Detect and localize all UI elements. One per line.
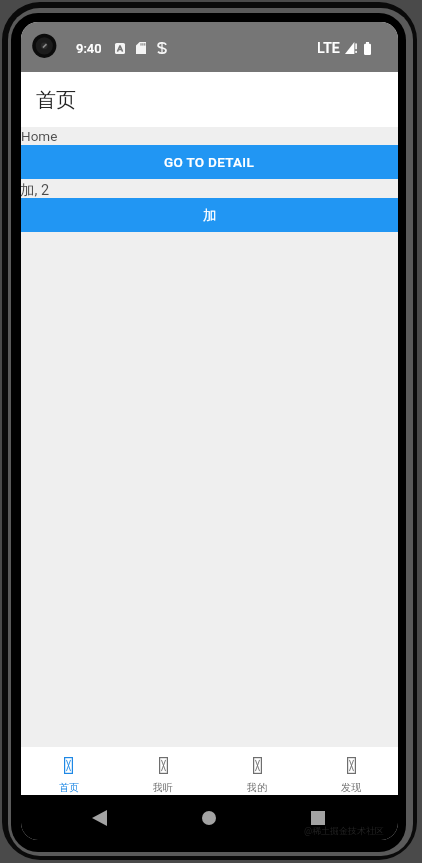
staticText: 发现 <box>341 781 361 794</box>
button[interactable]: 发现 <box>304 747 398 795</box>
button[interactable]: GO TO DETAIL <box>21 145 398 179</box>
button[interactable]: Back <box>82 801 116 835</box>
button[interactable]: 我听 <box>116 747 210 795</box>
staticText: 9:40 <box>76 41 102 56</box>
staticText: Home <box>21 128 58 144</box>
button[interactable]: 加 <box>21 198 398 232</box>
staticText: 加, 2 <box>21 181 50 199</box>
staticText: GO TO DETAIL <box>164 154 255 170</box>
staticText: 首页 <box>59 781 79 794</box>
button[interactable]: 我的 <box>210 747 304 795</box>
staticText: @稀土掘金技术社区 <box>304 825 385 836</box>
staticText: 首页 <box>36 88 76 113</box>
button[interactable]: Recent apps <box>301 801 335 835</box>
button[interactable]: 首页 <box>21 747 116 795</box>
staticText: LTE <box>317 40 340 56</box>
staticText: 我的 <box>247 781 267 794</box>
button[interactable]: Home <box>192 801 226 835</box>
staticText: 我听 <box>153 781 173 794</box>
staticText: 加 <box>203 207 217 224</box>
